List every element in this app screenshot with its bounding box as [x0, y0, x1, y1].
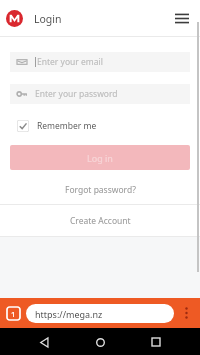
button[interactable]: Create Account: [0, 213, 200, 229]
staticText: Remember me: [37, 120, 97, 132]
staticText: Enter your password: [35, 88, 118, 100]
button[interactable]: Recent apps: [144, 330, 168, 354]
button[interactable]: Menu: [172, 8, 192, 28]
staticText: Login: [34, 12, 62, 26]
button[interactable]: Enter your password: [10, 84, 190, 104]
staticText: Log in: [87, 152, 113, 164]
button[interactable]: Home: [88, 330, 112, 354]
staticText: Enter your email: [37, 56, 103, 68]
button[interactable]: More options: [178, 305, 194, 321]
button[interactable]: Log in: [10, 145, 190, 170]
button[interactable]: Back: [32, 330, 56, 354]
staticText: 1: [11, 309, 16, 319]
button[interactable]: https://mega.nz: [26, 304, 174, 323]
button[interactable]: Tabs, 1 open: [7, 307, 20, 320]
staticText: Forgot password?: [65, 184, 136, 196]
button[interactable]: Forgot password?: [0, 182, 200, 198]
button[interactable]: Remember me: [17, 117, 200, 135]
staticText: https://mega.nz: [35, 308, 103, 320]
button[interactable]: Enter your email: [10, 52, 190, 72]
staticText: Create Account: [70, 215, 131, 227]
button[interactable]: Login: [6, 10, 62, 27]
